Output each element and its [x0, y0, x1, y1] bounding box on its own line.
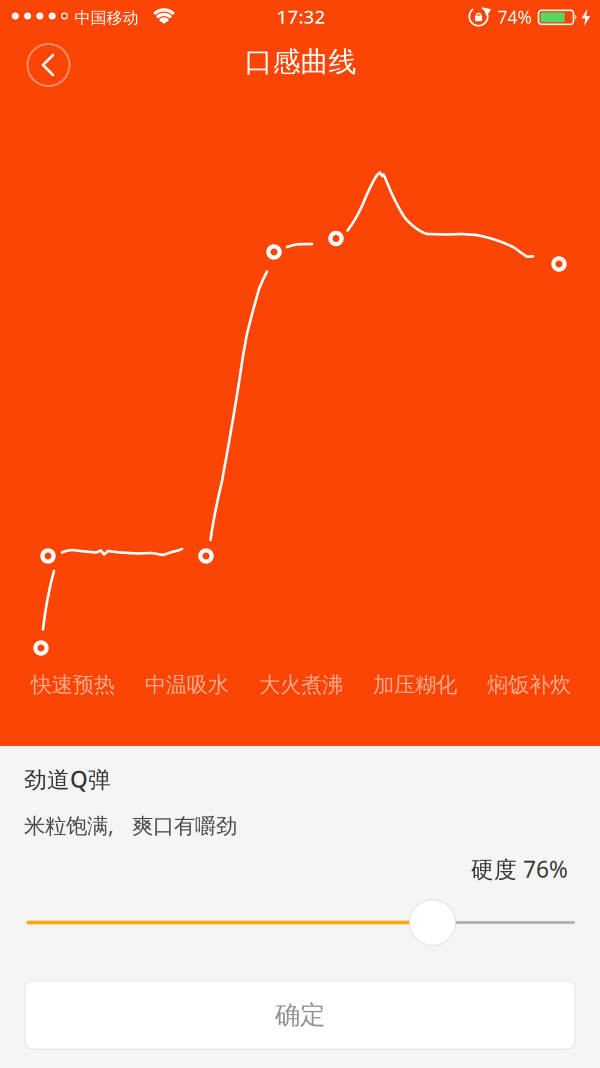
staticText: 大火煮沸: [259, 672, 343, 698]
staticText: 确定: [275, 999, 325, 1030]
staticText: 米粒饱满, 爽口有嚼劲: [24, 811, 237, 839]
button[interactable]: 硬度: [25, 894, 575, 950]
staticText: 劲道Q弹: [24, 764, 111, 794]
staticText: 口感曲线: [244, 45, 356, 79]
button[interactable]: 确定: [25, 981, 575, 1049]
staticText: 硬度 76%: [471, 854, 568, 884]
staticText: 17:32: [276, 4, 325, 29]
staticText: 快速预热: [31, 672, 115, 698]
staticText: 加压糊化: [373, 672, 457, 698]
staticText: 中国移动: [74, 8, 138, 28]
button[interactable]: Back: [26, 43, 70, 87]
staticText: 中温吸水: [145, 672, 229, 698]
staticText: 焖饭补炊: [487, 672, 571, 698]
staticText: 74%: [497, 5, 531, 28]
